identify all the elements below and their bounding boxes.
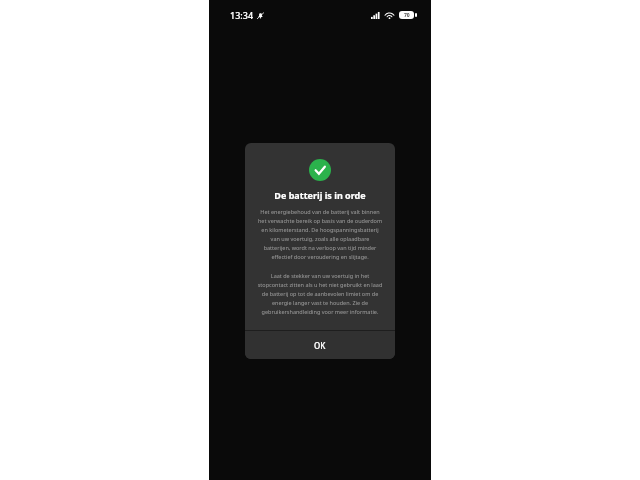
staticText: 70 [404, 12, 410, 19]
other: Battery healthy [309, 159, 331, 181]
button[interactable]: OK [245, 331, 395, 359]
staticText: 13:34 [230, 9, 254, 21]
staticText: De batterij is in orde [274, 189, 366, 201]
staticText: Het energiebehoud van de batterij valt b… [257, 208, 383, 261]
staticText: OK [314, 340, 326, 351]
staticText: Laat de stekker van uw voertuig in het s… [257, 272, 383, 316]
